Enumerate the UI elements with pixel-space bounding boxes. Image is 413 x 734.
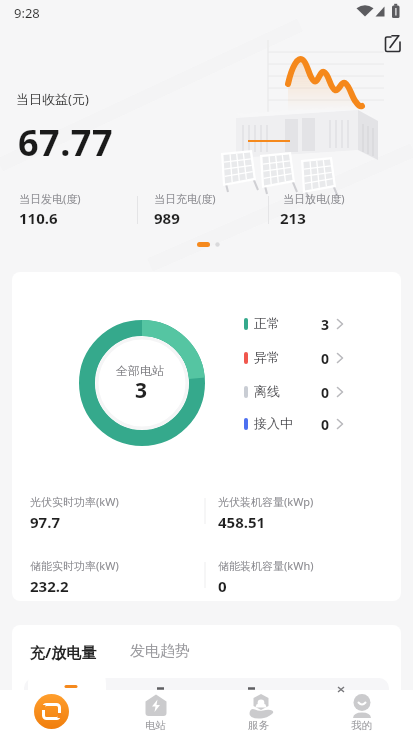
button[interactable]: 充/放电量 (22, 633, 89, 653)
staticText: 当日充电(度) (154, 191, 216, 206)
button[interactable] (379, 30, 407, 58)
staticText: 0 (321, 383, 330, 402)
staticText: 接入中 (254, 415, 293, 431)
staticText: 当日发电(度) (19, 191, 81, 206)
staticText: 储能装机容量(kWh) (218, 558, 314, 573)
staticText: 213 (280, 208, 306, 228)
button[interactable]: 服务 (207, 690, 310, 734)
staticText: 当日放电(度) (283, 191, 345, 206)
staticText: 充/放电量 (30, 642, 97, 662)
staticText: 67.77 (18, 118, 113, 167)
button[interactable]: 接入中 (238, 411, 350, 437)
staticText: 我的 (310, 719, 413, 732)
button[interactable]: 发电趋势 (122, 633, 182, 652)
button[interactable]: 我的 (310, 690, 413, 734)
staticText: 3 (321, 315, 330, 334)
staticText: 232.2 (30, 576, 69, 596)
staticText: 0 (321, 349, 330, 368)
button[interactable]: 离线 (238, 379, 350, 405)
staticText: 光伏装机容量(kWp) (218, 494, 314, 509)
staticText: 97.7 (30, 512, 60, 532)
staticText: 当日收益(元) (16, 90, 89, 108)
staticText: 服务 (207, 719, 310, 732)
staticText: 9:28 (14, 4, 40, 22)
staticText: 0 (321, 415, 330, 434)
button[interactable] (30, 690, 74, 734)
staticText: 光伏实时功率(kW) (30, 494, 119, 509)
staticText: 全部电站 (116, 363, 164, 378)
staticText: 储能实时功率(kW) (30, 558, 119, 573)
staticText: 110.6 (19, 208, 58, 228)
staticText: 电站 (104, 719, 207, 732)
staticText: 离线 (254, 383, 280, 399)
button[interactable]: 正常 (238, 311, 350, 337)
staticText: 0 (218, 576, 227, 596)
staticText: 发电趋势 (130, 642, 190, 661)
staticText: 458.51 (218, 512, 266, 532)
staticText: 3 (135, 376, 148, 405)
staticText: 异常 (254, 349, 280, 365)
staticText: 正常 (254, 315, 280, 331)
button[interactable]: 异常 (238, 345, 350, 371)
button[interactable]: 电站 (104, 690, 207, 734)
staticText: 989 (154, 208, 180, 228)
